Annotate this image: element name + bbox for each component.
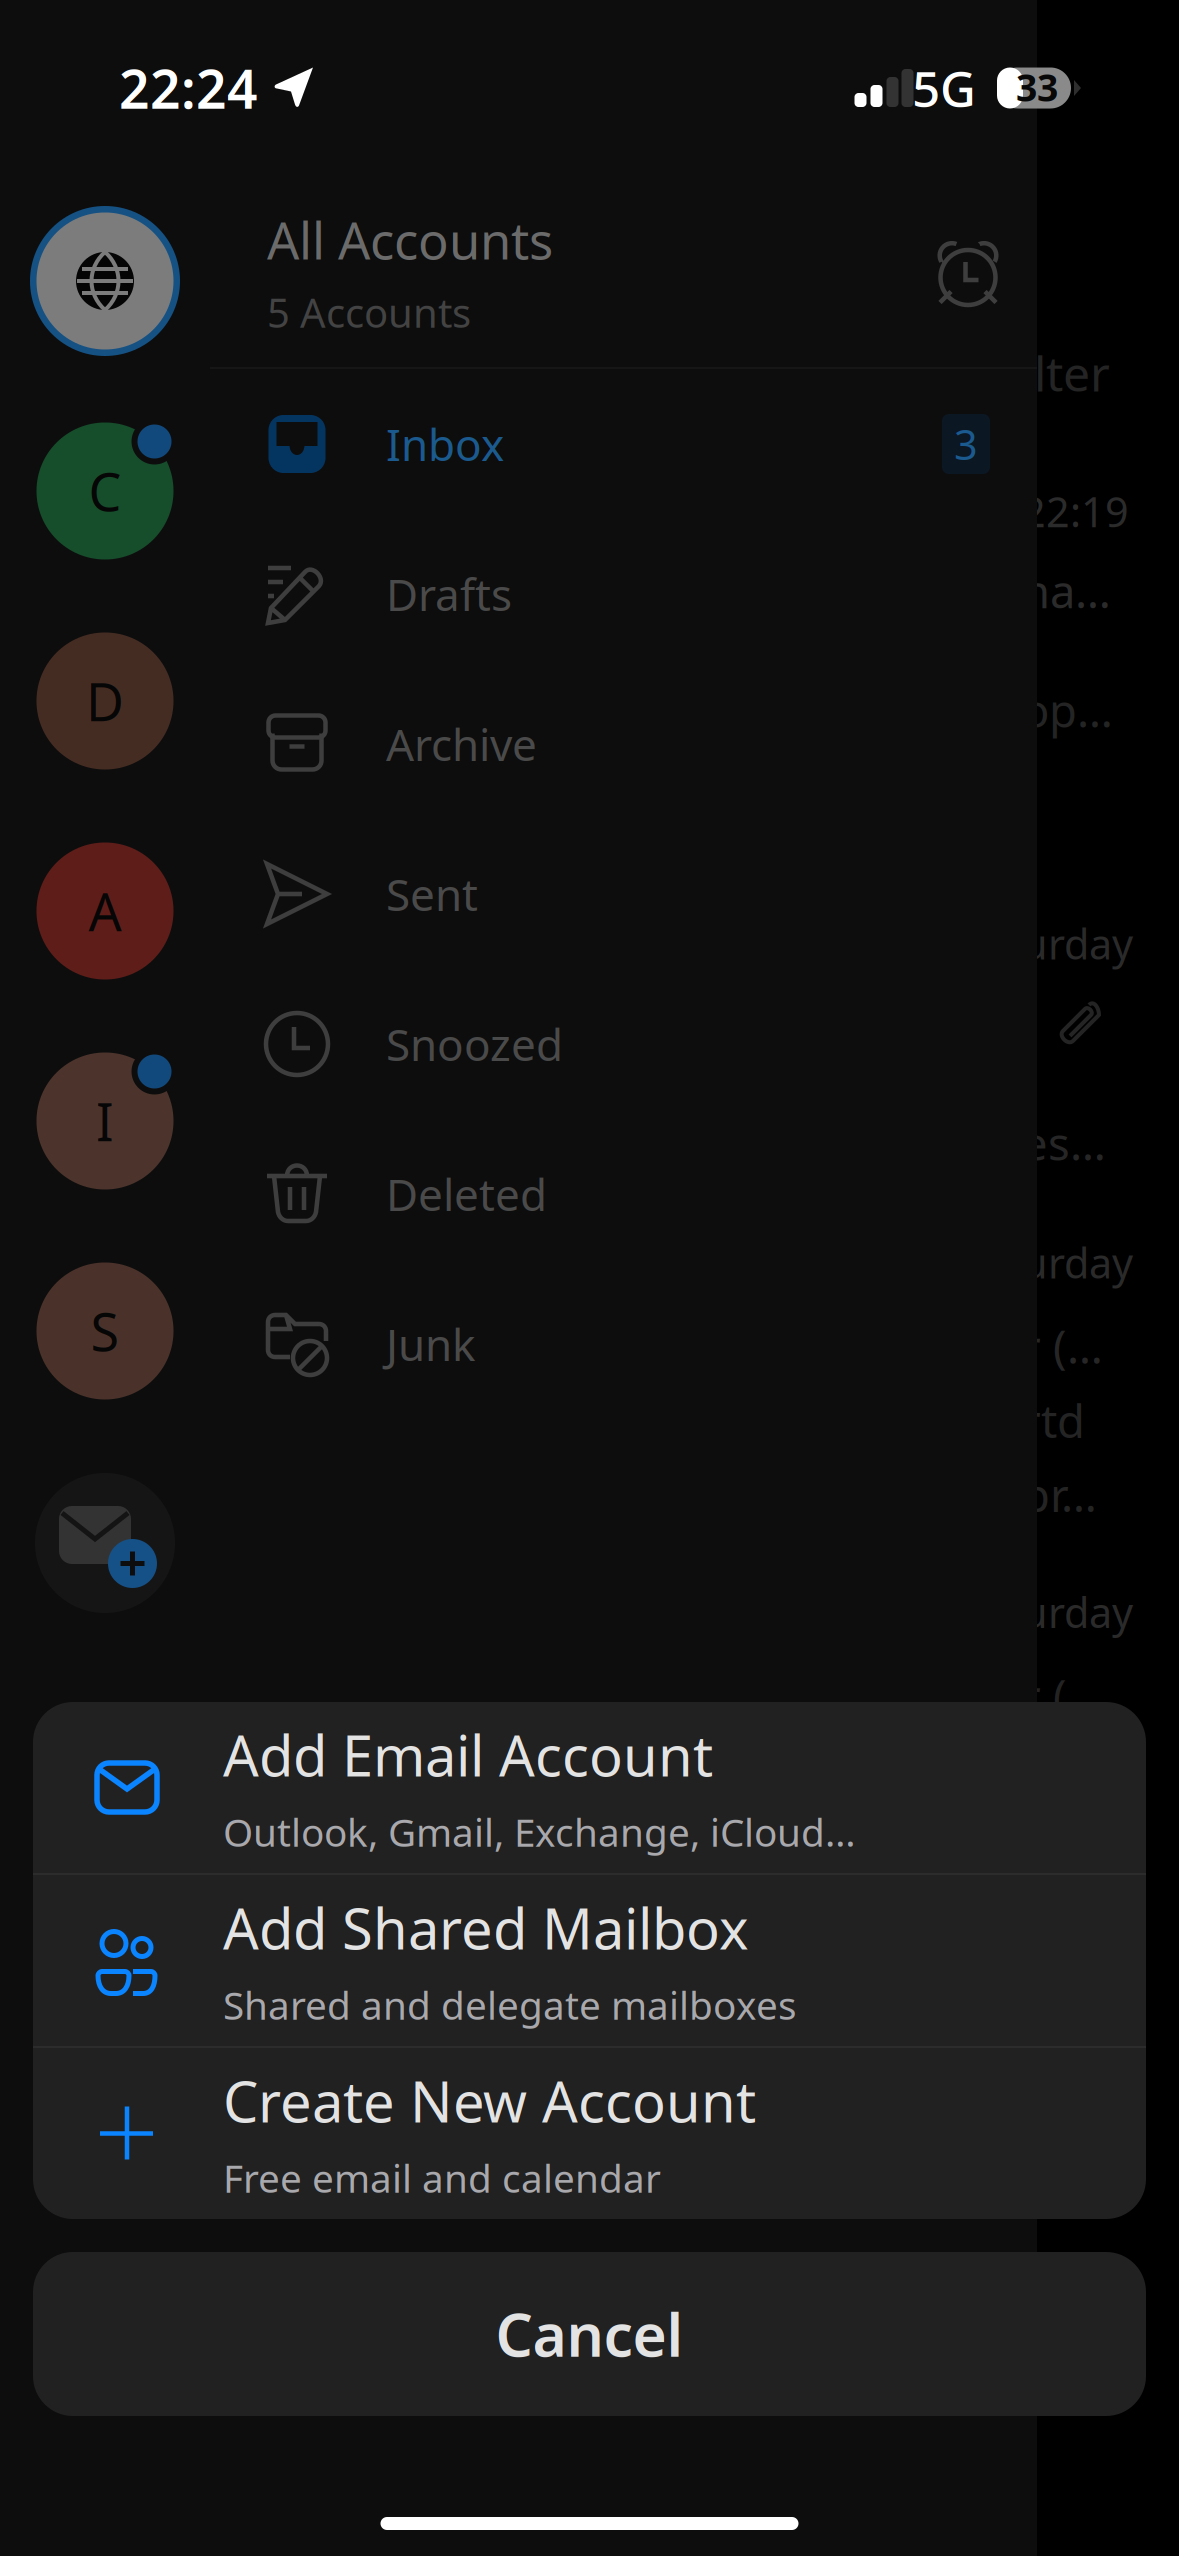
staticText: All Accounts (267, 206, 553, 274)
staticText: Add Shared Mailbox (223, 1891, 749, 1965)
button[interactable]: Account D (0, 596, 210, 806)
button[interactable]: Add Email Account (33, 1702, 1146, 1873)
button[interactable]: Account A (0, 806, 210, 1016)
staticText: rtd (1022, 1390, 1085, 1450)
button[interactable]: All Accounts (0, 176, 210, 386)
button[interactable]: Archive (210, 669, 1037, 819)
staticText: op… (1022, 680, 1113, 740)
staticText: es… (1022, 1113, 1106, 1173)
staticText: S (90, 1296, 119, 1366)
button[interactable]: Deleted (210, 1119, 1037, 1269)
staticText: Add Email Account (223, 1718, 713, 1792)
staticText: Junk (386, 1315, 475, 1373)
button[interactable]: Scheduled (932, 236, 1037, 308)
button[interactable]: Account I (0, 1016, 210, 1226)
button[interactable]: Inbox (210, 369, 1037, 519)
staticText: Deleted (386, 1165, 547, 1223)
staticText: 33 (1016, 62, 1058, 112)
staticText: I (96, 1086, 114, 1156)
staticText: pr… (1022, 1464, 1097, 1525)
staticText: A (88, 876, 121, 946)
button[interactable]: Sent (210, 819, 1037, 969)
button[interactable]: Snoozed (210, 969, 1037, 1119)
staticText: r (… (1022, 1316, 1103, 1376)
button[interactable]: Junk (210, 1269, 1037, 1419)
staticText: ha… (1022, 561, 1111, 621)
staticText: ilter (1022, 341, 1110, 405)
staticText: Cancel (495, 2295, 683, 2373)
staticText: 5 Accounts (267, 286, 471, 339)
staticText: Create New Account (223, 2064, 756, 2138)
button[interactable]: Drafts (210, 519, 1037, 669)
staticText: Drafts (386, 565, 512, 623)
staticText: Free email and calendar (223, 2152, 661, 2203)
staticText: 3 (954, 417, 978, 471)
staticText: Outlook, Gmail, Exchange, iCloud… (223, 1806, 856, 1857)
staticText: C (88, 456, 121, 526)
button[interactable]: Account C (0, 386, 210, 596)
staticText: 22:19 (1022, 484, 1129, 539)
staticText: Inbox (386, 415, 504, 473)
button[interactable]: Add account (35, 1473, 175, 1613)
button[interactable]: Add Shared Mailbox (33, 1875, 1146, 2046)
staticText: urday (1022, 916, 1133, 971)
button[interactable]: Account S (0, 1226, 210, 1436)
staticText: 22:24 (119, 53, 258, 123)
button[interactable]: Create New Account (33, 2048, 1146, 2219)
staticText: 5G (912, 55, 976, 121)
button[interactable]: Cancel (33, 2252, 1146, 2416)
staticText: D (86, 666, 124, 736)
staticText: r (… (1022, 1665, 1103, 1726)
staticText: Shared and delegate mailboxes (223, 1979, 797, 2030)
staticText: Sent (386, 865, 478, 923)
staticText: urday (1022, 1585, 1133, 1639)
staticText: urday (1022, 1235, 1133, 1290)
staticText: Archive (386, 715, 537, 773)
staticText: Snoozed (386, 1015, 563, 1073)
